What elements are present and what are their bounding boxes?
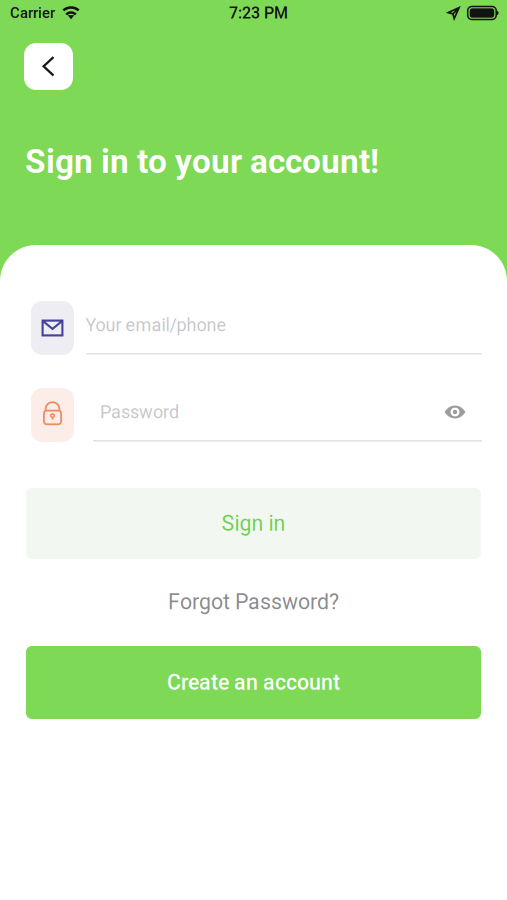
staticText: Create an account [167,670,340,695]
button[interactable]: Create an account [26,646,481,719]
staticText: Forgot Password? [168,589,339,614]
button[interactable]: Show password [440,401,482,423]
button[interactable]: Back [24,43,73,90]
button[interactable]: Forgot Password? [168,590,339,614]
staticText: Password [100,401,179,423]
staticText: Sign in to your account! [25,142,379,181]
staticText: 7:23 PM [229,4,288,22]
staticText: Sign in [221,511,285,536]
staticText: Your email/phone [86,314,227,336]
staticText: Carrier [10,4,55,22]
button[interactable]: Sign in [26,488,481,559]
